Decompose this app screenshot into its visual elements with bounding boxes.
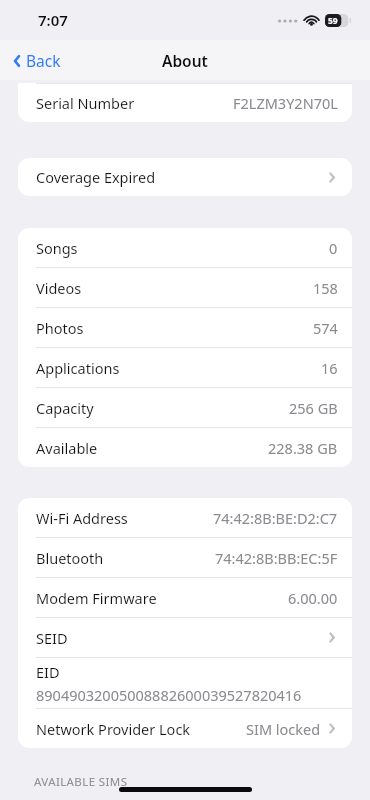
staticText: Capacity bbox=[36, 398, 94, 418]
staticText: 74:42:8B:BB:EC:5F bbox=[215, 548, 338, 568]
staticText: 158 bbox=[313, 278, 338, 298]
button[interactable]: Applications bbox=[18, 348, 352, 387]
button[interactable]: Back bbox=[0, 45, 73, 76]
staticText: Videos bbox=[36, 278, 82, 298]
button[interactable]: EID bbox=[18, 658, 352, 708]
staticText: Back bbox=[26, 50, 61, 71]
staticText: Coverage Expired bbox=[36, 167, 156, 187]
staticText: Network Provider Lock bbox=[36, 719, 191, 739]
staticText: SEID bbox=[36, 628, 68, 648]
staticText: 256 GB bbox=[289, 398, 338, 418]
button[interactable]: Bluetooth bbox=[18, 538, 352, 577]
staticText: Applications bbox=[36, 358, 120, 378]
button[interactable]: SEID bbox=[18, 618, 352, 657]
button[interactable]: Available bbox=[18, 428, 352, 467]
staticText: F2LZM3Y2N70L bbox=[233, 93, 338, 113]
staticText: SIM locked bbox=[246, 719, 321, 739]
staticText: 574 bbox=[313, 318, 338, 338]
staticText: AVAILABLE SIMS bbox=[34, 774, 128, 790]
staticText: 6.00.00 bbox=[288, 588, 338, 608]
staticText: Modem Firmware bbox=[36, 588, 157, 608]
staticText: EID bbox=[36, 662, 60, 682]
button[interactable]: Serial Number bbox=[18, 84, 352, 122]
staticText: 74:42:8B:BE:D2:C7 bbox=[213, 508, 338, 528]
staticText: Photos bbox=[36, 318, 84, 338]
staticText: 7:07 bbox=[38, 10, 68, 30]
staticText: Bluetooth bbox=[36, 548, 104, 568]
staticText: Available bbox=[36, 438, 98, 458]
button[interactable]: Wi-Fi Address bbox=[18, 498, 352, 537]
staticText: Serial Number bbox=[36, 93, 135, 113]
staticText: 0 bbox=[329, 238, 338, 258]
button[interactable]: Capacity bbox=[18, 388, 352, 427]
button[interactable]: Videos bbox=[18, 268, 352, 307]
staticText: Wi-Fi Address bbox=[36, 508, 128, 528]
staticText: About bbox=[162, 50, 208, 71]
staticText: 16 bbox=[321, 358, 338, 378]
staticText: 89049032005008882600039527820416 bbox=[36, 685, 302, 705]
button[interactable]: Coverage Expired bbox=[18, 158, 352, 196]
button[interactable]: Photos bbox=[18, 308, 352, 347]
staticText: 59 bbox=[328, 15, 338, 27]
button[interactable]: Songs bbox=[18, 228, 352, 267]
staticText: Songs bbox=[36, 238, 78, 258]
button[interactable]: Modem Firmware bbox=[18, 578, 352, 617]
button[interactable]: Network Provider Lock bbox=[18, 709, 352, 748]
staticText: 228.38 GB bbox=[268, 438, 338, 458]
